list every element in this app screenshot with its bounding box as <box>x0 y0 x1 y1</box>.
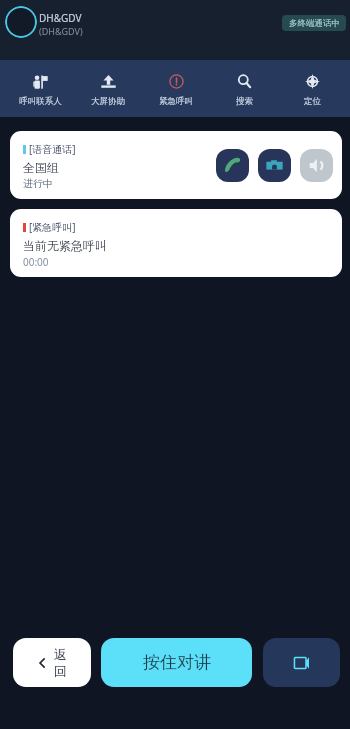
button[interactable]: Speaker <box>300 149 333 182</box>
staticText: 按住对讲 <box>143 652 211 673</box>
staticText: 多终端通话中 <box>289 18 340 29</box>
button[interactable]: 定位 <box>278 74 346 107</box>
staticText: 紧急呼叫 <box>159 96 193 107</box>
button[interactable]: Answer call <box>216 149 249 182</box>
button[interactable]: Profile <box>5 6 37 38</box>
staticText: 呼叫联系人 <box>19 96 62 107</box>
staticText: 返回 <box>53 646 68 680</box>
button[interactable]: [紧急呼叫] <box>10 209 342 277</box>
staticText: 搜索 <box>236 96 253 107</box>
staticText: [语音通话] <box>29 142 76 156</box>
staticText: [紧急呼叫] <box>29 220 76 234</box>
button[interactable]: 返回 <box>13 638 91 687</box>
button[interactable]: Video call <box>263 638 340 687</box>
staticText: 定位 <box>304 96 321 107</box>
button[interactable]: 呼叫联系人 <box>6 74 74 107</box>
button[interactable]: Video camera <box>258 149 291 182</box>
staticText: 大屏协助 <box>91 96 125 107</box>
staticText: (DH&GDV) <box>39 25 83 37</box>
button[interactable]: 紧急呼叫 <box>142 74 210 107</box>
staticText: DH&GDV <box>39 11 82 25</box>
staticText: 00:00 <box>23 255 49 269</box>
button[interactable]: 搜索 <box>210 74 278 107</box>
staticText: 当前无紧急呼叫 <box>23 238 107 253</box>
button[interactable]: [语音通话] <box>10 131 342 199</box>
staticText: 进行中 <box>23 177 53 190</box>
staticText: 全国组 <box>23 160 59 175</box>
button[interactable]: 大屏协助 <box>74 74 142 107</box>
button[interactable]: 按住对讲 <box>101 638 252 687</box>
button[interactable]: 多终端通话中 <box>282 15 346 31</box>
